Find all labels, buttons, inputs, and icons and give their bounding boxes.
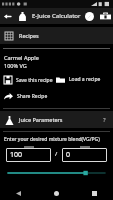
button[interactable]: Compass	[81, 8, 97, 24]
button[interactable]: Load a recipe	[56, 73, 113, 86]
button[interactable]: 100	[6, 148, 51, 162]
staticText: /	[55, 150, 58, 158]
button[interactable]: Recent apps	[75, 186, 113, 200]
button[interactable]: 0	[62, 148, 107, 162]
button[interactable]: Back	[0, 9, 14, 23]
button[interactable]: Juice Parameters	[0, 111, 113, 128]
staticText: 0	[66, 150, 71, 160]
button[interactable]: Back	[0, 186, 37, 200]
staticText: Recipes	[19, 32, 39, 39]
staticText: Juice Parameters	[19, 116, 63, 123]
staticText: 100% VG	[4, 62, 27, 69]
button[interactable]: VG PG blend slider	[0, 168, 113, 178]
button[interactable]: Home	[37, 186, 75, 200]
button[interactable]: Bottle	[14, 8, 30, 24]
staticText: 100	[10, 150, 23, 160]
button[interactable]: Save this recipe	[0, 74, 56, 86]
staticText: Carmel Apple	[4, 54, 39, 61]
button[interactable]: Help	[99, 115, 109, 125]
button[interactable]: Recipes	[0, 27, 113, 44]
staticText: Load a recipe	[69, 76, 101, 83]
staticText: ?	[103, 116, 106, 124]
staticText: Save this recipe	[16, 77, 53, 84]
button[interactable]: Share Recipe	[0, 90, 113, 103]
staticText: E-Juice Calculator	[32, 12, 81, 20]
button[interactable]: Toolbox	[97, 8, 113, 24]
staticText: Enter your desired mixture blend(VG/PG)	[4, 136, 100, 143]
staticText: Share Recipe	[17, 93, 48, 100]
